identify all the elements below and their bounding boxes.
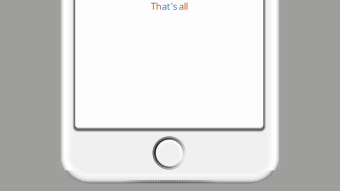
staticText: That's all (151, 0, 188, 12)
